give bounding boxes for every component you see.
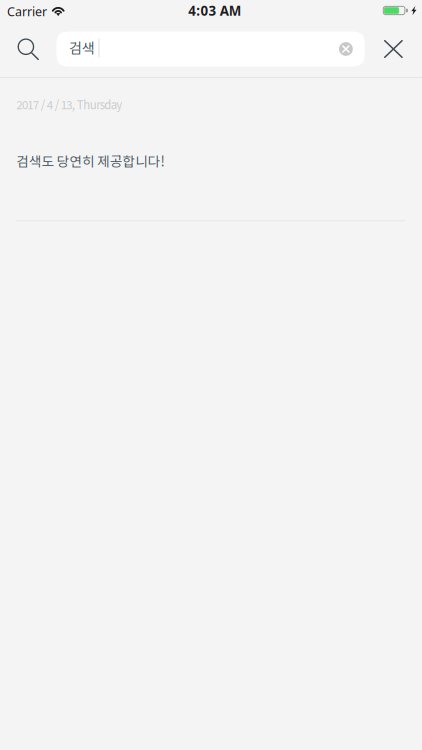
button[interactable]: Close search xyxy=(365,26,422,72)
button[interactable]: Search xyxy=(0,26,56,72)
staticText: 2017 / 4 / 13, Thursday xyxy=(16,96,122,113)
staticText: 4:03 AM xyxy=(188,1,242,20)
staticText: Carrier xyxy=(7,3,47,20)
button[interactable]: Clear text xyxy=(332,31,359,66)
staticText: 검색도 당연히 제공합니다! xyxy=(16,151,164,170)
staticText: 검색 xyxy=(69,37,95,58)
